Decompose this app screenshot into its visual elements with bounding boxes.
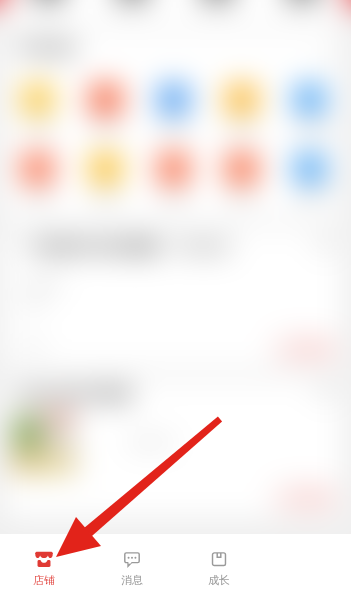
button[interactable]: 1286 — [173, 0, 258, 12]
staticText: 功能 — [27, 189, 49, 203]
button[interactable]: 功能 — [4, 153, 71, 203]
button[interactable]: 1286 — [4, 0, 88, 12]
staticText: 新订单待发货提醒 — [20, 386, 132, 404]
staticText: 1286 — [198, 0, 233, 6]
staticText: 成长 — [208, 573, 230, 587]
staticText: 功能 — [162, 120, 184, 134]
button[interactable]: 功能 — [71, 153, 139, 203]
button[interactable]: 功能 — [71, 84, 139, 134]
button[interactable]: 功能 — [4, 84, 71, 134]
staticText: 1286 — [29, 0, 64, 6]
staticText: 功能 — [94, 189, 116, 203]
staticText: 常用功能 — [18, 40, 74, 58]
staticText: 今日访客 — [109, 11, 153, 12]
button[interactable]: 立即查看 — [271, 485, 338, 510]
button[interactable]: 立即查看 — [271, 336, 338, 361]
staticText: 功能 — [230, 189, 252, 203]
button[interactable] — [12, 408, 75, 474]
staticText: 功能 — [94, 120, 116, 134]
staticText: 订单超时未发货提醒 — [24, 238, 159, 257]
button[interactable]: 功能 — [207, 84, 275, 134]
staticText: 功能 — [27, 120, 49, 134]
staticText: 功能 — [298, 189, 320, 203]
button[interactable]: 1286 — [258, 0, 343, 12]
button[interactable]: 消息 — [88, 534, 175, 590]
button[interactable]: 功能 — [139, 84, 207, 134]
staticText: 消息 — [121, 573, 143, 587]
button[interactable]: 功能 — [275, 84, 343, 134]
staticText: 1286 — [113, 0, 148, 6]
staticText: 功能 — [162, 189, 184, 203]
staticText: 今日访客 — [279, 11, 323, 12]
button[interactable]: 店铺 — [0, 534, 88, 590]
staticText: 今日访客 — [24, 11, 68, 12]
button[interactable]: 功能 — [207, 153, 275, 203]
button[interactable]: 功能 — [275, 153, 343, 203]
staticText: 今日访客 — [194, 11, 238, 12]
staticText: 1286 — [283, 0, 318, 6]
staticText: 功能 — [230, 120, 252, 134]
button[interactable]: 功能 — [139, 153, 207, 203]
staticText: 店铺 — [33, 573, 55, 587]
staticText: 功能 — [298, 120, 320, 134]
button[interactable]: 1286 — [88, 0, 173, 12]
button[interactable]: 成长 — [175, 534, 263, 590]
